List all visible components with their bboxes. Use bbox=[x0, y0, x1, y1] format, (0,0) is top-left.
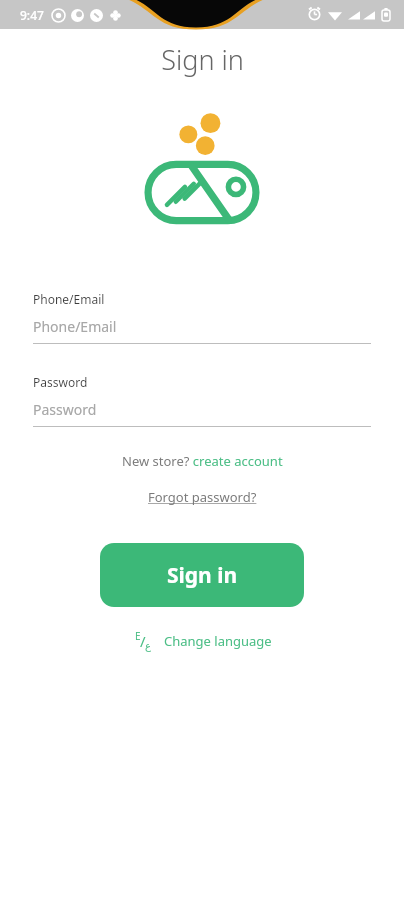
staticText: Forgot password? bbox=[148, 488, 257, 506]
staticText: Sign in bbox=[161, 41, 244, 78]
staticText: E bbox=[135, 629, 141, 643]
staticText: New store? create account bbox=[122, 452, 283, 470]
staticText: 9:47 bbox=[20, 7, 44, 23]
button[interactable]: Sign in bbox=[100, 543, 304, 607]
button[interactable]: Password bbox=[33, 374, 371, 427]
staticText: Password bbox=[33, 374, 88, 390]
other: Change language bbox=[132, 629, 154, 653]
staticText: Phone/Email bbox=[33, 317, 117, 336]
button[interactable]: New store? create account bbox=[116, 449, 289, 473]
staticText: / bbox=[140, 631, 146, 651]
staticText: Sign in bbox=[167, 561, 238, 590]
staticText: Password bbox=[33, 400, 97, 419]
staticText: Change language bbox=[164, 632, 272, 650]
staticText: ع bbox=[145, 640, 151, 652]
staticText: Phone/Email bbox=[33, 291, 105, 307]
button[interactable]: Forgot password? bbox=[140, 485, 265, 509]
button[interactable]: Change language bbox=[124, 625, 280, 657]
button[interactable]: Phone/Email bbox=[33, 291, 371, 344]
